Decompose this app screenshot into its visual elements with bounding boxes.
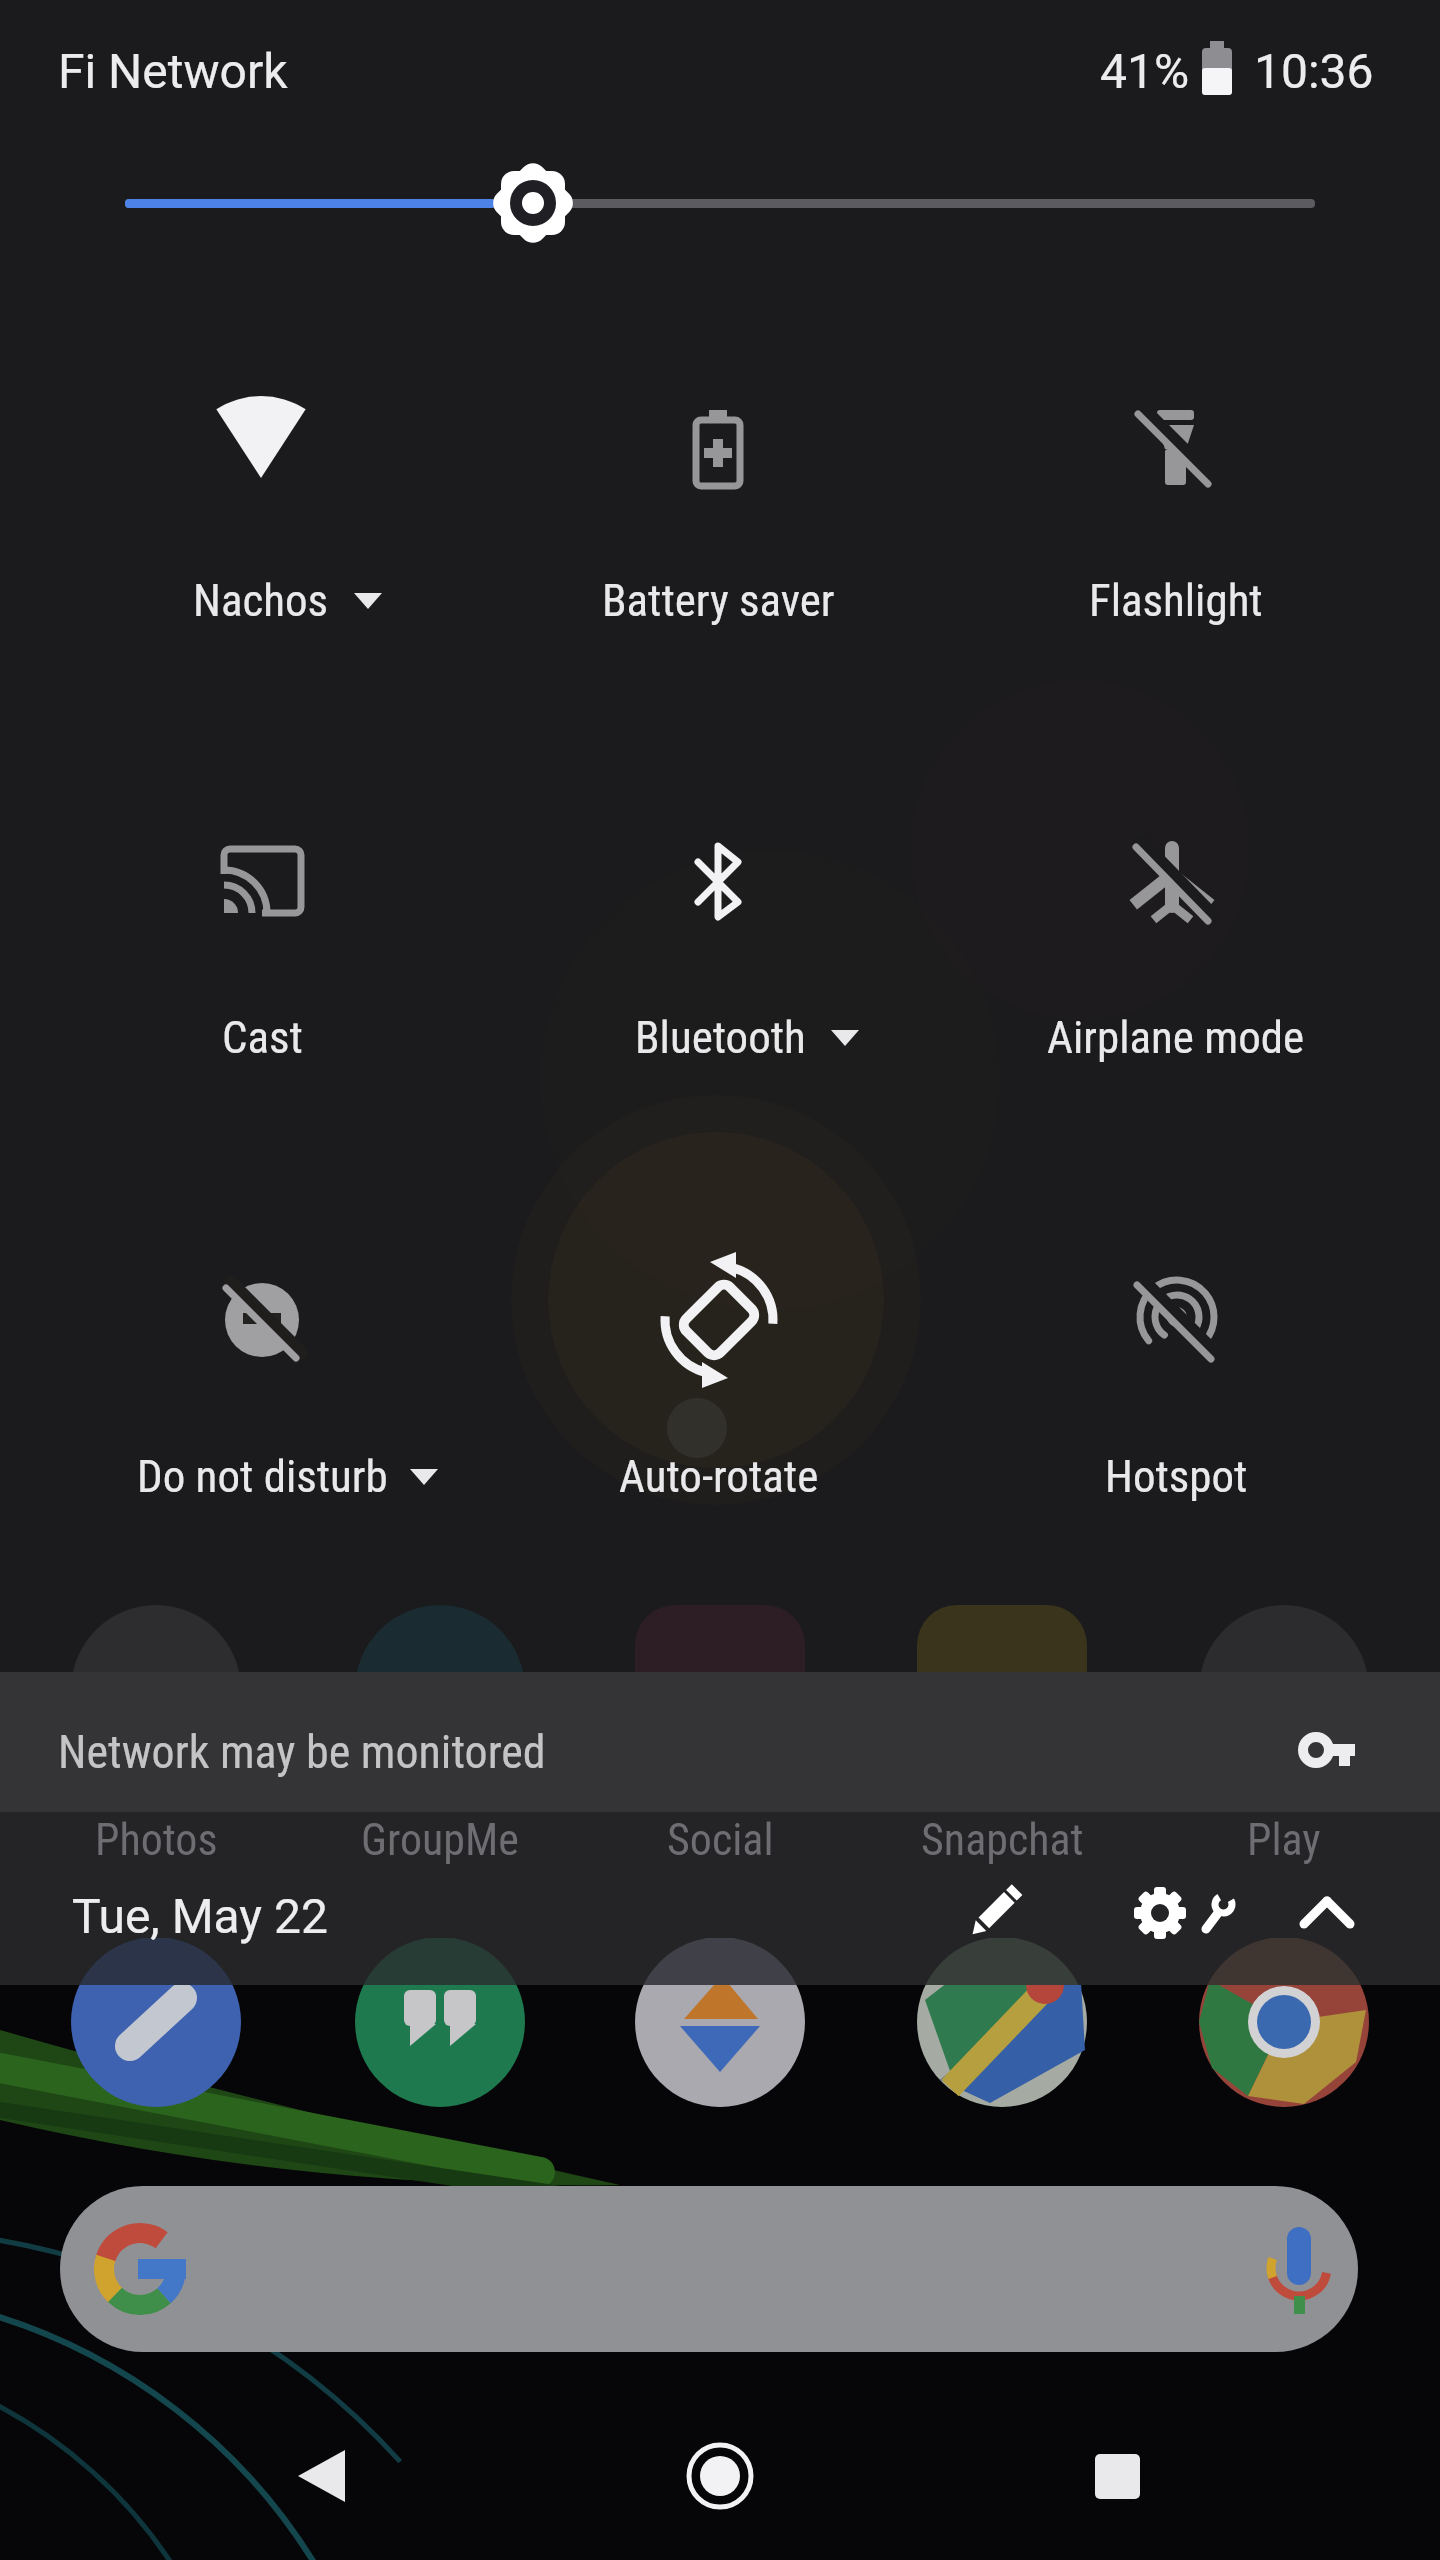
staticText: Fi Network (58, 43, 288, 99)
button[interactable] (530, 1255, 910, 1545)
button[interactable] (250, 2410, 390, 2540)
staticText: Bluetooth (635, 1011, 806, 1064)
staticText: GroupMe (361, 1814, 519, 1866)
button[interactable] (72, 1255, 452, 1545)
button[interactable] (350, 1932, 530, 2112)
button[interactable] (1050, 2410, 1190, 2540)
button[interactable] (530, 823, 910, 1113)
button[interactable] (1270, 1860, 1390, 1970)
staticText: Tue, May 22 (72, 1888, 328, 1944)
button[interactable] (0, 1672, 1440, 1812)
staticText: Flashlight (1089, 574, 1263, 627)
button[interactable] (72, 380, 452, 670)
button[interactable] (60, 2186, 1358, 2352)
staticText: Do not disturb (137, 1450, 388, 1503)
button[interactable] (72, 823, 452, 1113)
staticText: Cast (222, 1011, 303, 1064)
button[interactable] (912, 1932, 1092, 2112)
staticText: Nachos (193, 574, 329, 627)
staticText: Airplane mode (1047, 1011, 1305, 1064)
button[interactable] (530, 380, 910, 670)
button[interactable] (66, 1932, 246, 2112)
button[interactable] (1194, 1932, 1374, 2112)
staticText: Snapchat (921, 1814, 1084, 1866)
staticText: Battery saver (602, 574, 835, 627)
staticText: Social (667, 1814, 774, 1866)
staticText: Photos (95, 1814, 218, 1866)
staticText: Hotspot (1105, 1450, 1248, 1503)
button[interactable] (1110, 1860, 1240, 1970)
button[interactable] (930, 1860, 1050, 1970)
button[interactable] (100, 150, 1340, 260)
staticText: Play (1247, 1814, 1321, 1866)
staticText: Auto-rotate (619, 1450, 819, 1503)
staticText: 10:36 (1254, 43, 1374, 99)
button[interactable] (986, 823, 1366, 1113)
button[interactable] (986, 380, 1366, 670)
staticText: Network may be monitored (58, 1725, 546, 1779)
button[interactable] (650, 2410, 790, 2540)
button[interactable] (986, 1255, 1366, 1545)
button[interactable] (630, 1932, 810, 2112)
staticText: 41% (1100, 43, 1190, 99)
